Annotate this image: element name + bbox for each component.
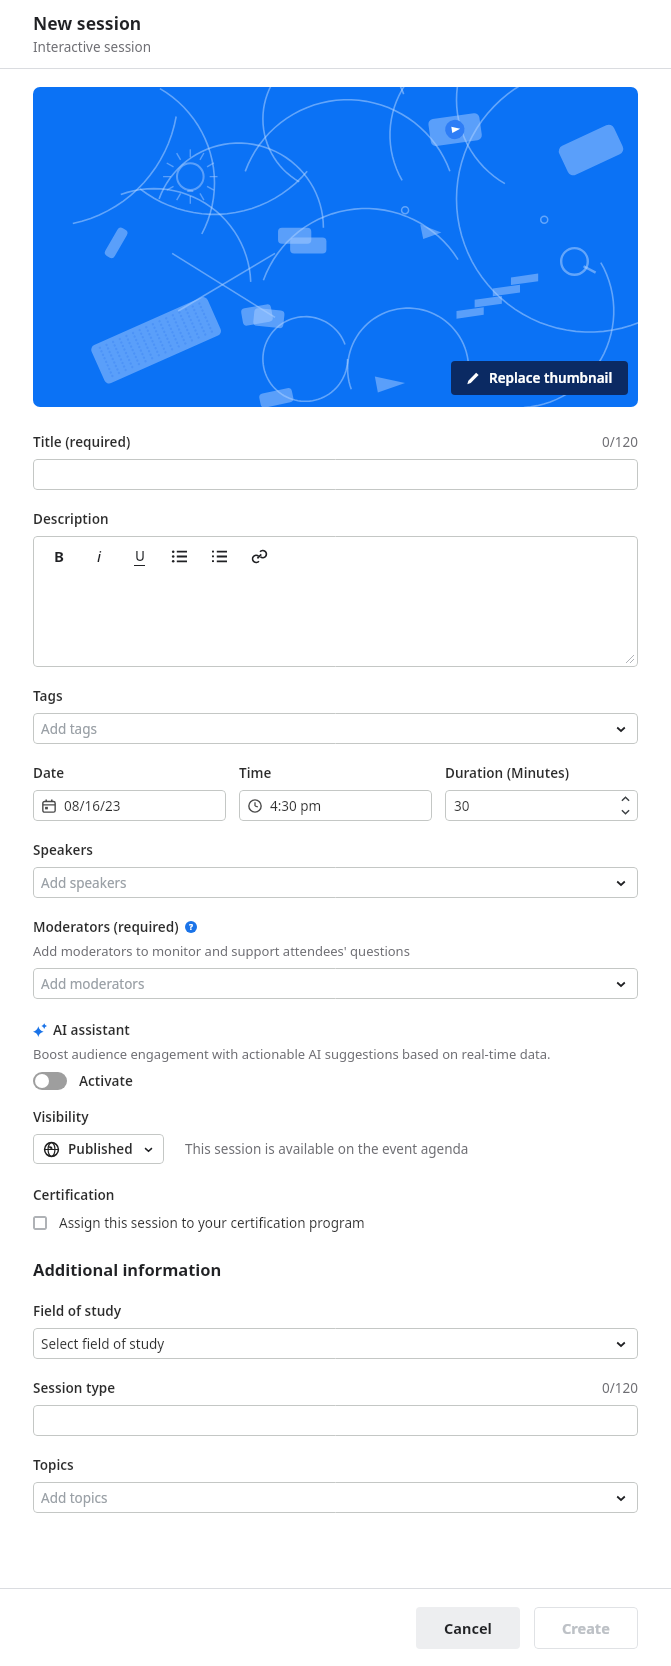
button[interactable]: Cancel [416,1607,520,1649]
staticText: Add moderators [41,975,145,993]
staticText: Assign this session to your certificatio… [59,1214,365,1232]
staticText: 0/120 [602,1379,638,1397]
staticText: Published [68,1140,133,1158]
staticText: Time [239,764,272,782]
button[interactable]: Create [534,1607,638,1649]
staticText: 30 [454,797,470,815]
button[interactable]: Replace thumbnail [33,87,638,407]
staticText: Visibility [33,1108,89,1126]
button[interactable]: B [33,536,638,667]
staticText: Add speakers [41,874,127,892]
staticText: Title (required) [33,433,131,451]
staticText: 08/16/23 [64,797,121,815]
button[interactable]: B [49,546,69,566]
staticText: Replace thumbnail [489,369,613,387]
button[interactable]: Add tags [33,713,638,744]
staticText: Additional information [33,1258,222,1280]
staticText: i [97,546,102,566]
staticText: Duration (Minutes) [445,764,570,782]
button[interactable]: 4:30 pm [239,790,432,821]
staticText: Description [33,510,109,528]
staticText: Session type [33,1379,116,1397]
button[interactable]: Help [185,921,197,933]
button[interactable]: Add speakers [33,867,638,898]
staticText: Add tags [41,720,97,738]
staticText: U [135,547,145,565]
button[interactable] [33,459,638,490]
button[interactable]: Add topics [33,1482,638,1513]
staticText: Interactive session [33,38,152,56]
staticText: Field of study [33,1302,122,1320]
staticText: Tags [33,687,63,705]
staticText: ? [189,921,194,933]
staticText: Activate [79,1072,133,1090]
staticText: Moderators (required) [33,918,179,936]
button[interactable]: Increase [621,795,630,804]
button[interactable]: Assign this session to your certificatio… [33,1214,365,1232]
button[interactable] [209,546,229,566]
staticText: Boost audience engagement with actionabl… [33,1045,551,1063]
button[interactable]: Add moderators [33,968,638,999]
staticText: Date [33,764,65,782]
button[interactable] [169,546,189,566]
staticText: Certification [33,1186,115,1204]
staticText: Add topics [41,1489,108,1507]
button[interactable]: Select field of study [33,1328,638,1359]
staticText: This session is available on the event a… [185,1140,469,1158]
button[interactable]: 30 [445,790,638,821]
staticText: Cancel [444,1618,492,1638]
button[interactable] [33,1405,638,1436]
staticText: Select field of study [41,1335,165,1353]
staticText: Topics [33,1456,74,1474]
button[interactable] [249,546,269,566]
button[interactable]: Decrease [621,807,630,816]
button[interactable]: Replace thumbnail [451,361,628,395]
staticText: Add moderators to monitor and support at… [33,942,410,960]
staticText: B [54,546,64,566]
staticText: 4:30 pm [270,797,322,815]
button[interactable]: U [129,546,149,566]
staticText: Speakers [33,841,94,859]
staticText: 0/120 [602,433,638,451]
button[interactable]: Published [33,1134,164,1164]
staticText: AI assistant [53,1021,130,1039]
staticText: New session [33,11,142,35]
button[interactable]: Activate [33,1072,133,1090]
button[interactable]: 08/16/23 [33,790,226,821]
staticText: Create [562,1618,610,1638]
button[interactable]: i [89,546,109,566]
